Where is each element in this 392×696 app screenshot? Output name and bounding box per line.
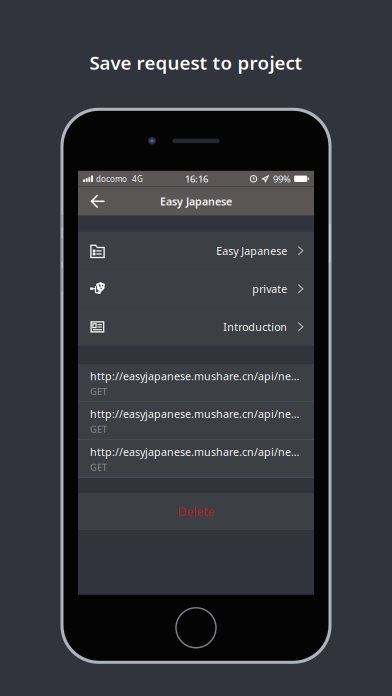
button[interactable]: Easy Japanese bbox=[78, 232, 314, 270]
button[interactable]: http://easyjapanese.mushare.cn/api/news/… bbox=[78, 440, 314, 478]
button[interactable]: http://easyjapanese.mushare.cn/api/news/… bbox=[78, 402, 314, 440]
staticText: http://easyjapanese.mushare.cn/api/news/… bbox=[90, 407, 306, 421]
staticText: GET bbox=[90, 461, 107, 473]
staticText: 99% bbox=[273, 173, 291, 185]
staticText: Delete bbox=[177, 503, 214, 519]
button[interactable]: http://easyjapanese.mushare.cn/api/news/… bbox=[78, 364, 314, 402]
staticText: private bbox=[252, 282, 287, 296]
staticText: 4G bbox=[132, 173, 143, 184]
staticText: 16:16 bbox=[185, 173, 208, 185]
staticText: Easy Japanese bbox=[216, 244, 287, 258]
staticText: GET bbox=[90, 423, 107, 435]
staticText: Save request to project bbox=[89, 50, 302, 75]
staticText: http://easyjapanese.mushare.cn/api/news/… bbox=[90, 369, 306, 383]
staticText: Easy Japanese bbox=[160, 194, 232, 208]
button[interactable]: Delete bbox=[78, 493, 314, 530]
staticText: GET bbox=[90, 385, 107, 397]
button[interactable]: Introduction bbox=[78, 308, 314, 346]
staticText: http://easyjapanese.mushare.cn/api/news/… bbox=[90, 445, 306, 459]
button[interactable]: Back bbox=[78, 187, 118, 216]
staticText: docomo bbox=[96, 173, 127, 184]
button[interactable]: private bbox=[78, 270, 314, 308]
staticText: Introduction bbox=[223, 320, 287, 334]
